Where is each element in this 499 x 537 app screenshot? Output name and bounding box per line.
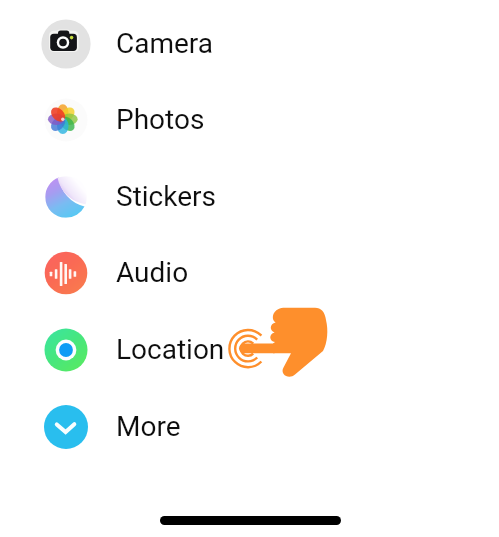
staticText: Location [116, 333, 225, 366]
button[interactable]: Camera [0, 6, 499, 83]
staticText: Stickers [116, 180, 216, 213]
other: More [40, 401, 92, 453]
staticText: Camera [116, 27, 214, 60]
button[interactable]: Location [0, 312, 499, 389]
other: Camera [40, 18, 92, 70]
staticText: More [116, 410, 181, 443]
staticText: Audio [116, 256, 189, 289]
staticText: Photos [116, 103, 205, 136]
other: Audio [40, 247, 92, 299]
button[interactable]: Photos [0, 82, 499, 159]
other: Location [40, 324, 92, 376]
button[interactable]: Stickers [0, 159, 499, 236]
other: Photos [40, 94, 92, 146]
other: Tap gesture [228, 298, 334, 382]
button[interactable]: More [0, 389, 499, 466]
other: Stickers [40, 171, 92, 223]
button[interactable]: Audio [0, 235, 499, 312]
